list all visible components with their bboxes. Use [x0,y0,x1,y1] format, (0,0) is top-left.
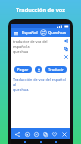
button[interactable]: System navigation [40,141,42,143]
button[interactable]: Message [32,130,40,138]
staticText: Español [22,30,38,36]
button[interactable]: Quechua [47,30,68,36]
button[interactable]: Copy [63,46,69,52]
button[interactable]: Traducir [45,66,67,73]
staticText: quechua. [13,87,30,92]
button[interactable]: Español [19,30,40,36]
staticText: traductor de voz del español a [13,39,61,49]
button[interactable]: Pegar [14,66,32,73]
button[interactable]: WhatsApp [23,130,31,138]
button[interactable]: Copy [41,130,49,138]
button[interactable]: Share [13,130,21,138]
button[interactable]: Listen [63,38,69,44]
staticText: Quechua [48,30,67,36]
button[interactable]: Microphone [35,66,42,73]
button[interactable]: Menu [13,30,19,36]
button[interactable]: Clear [63,54,69,60]
button[interactable]: Close [60,130,68,138]
button[interactable]: Swap languages [40,29,47,36]
staticText: quechua [13,49,29,54]
button[interactable]: Favorite [50,130,58,138]
staticText: Traducción de voz del español al [13,77,68,87]
staticText: Traducción de voz [16,6,65,13]
staticText: Traducir [48,67,64,72]
button[interactable]: System navigation [24,141,26,143]
button[interactable]: System navigation [55,141,57,143]
staticText: Pegar [17,67,29,72]
